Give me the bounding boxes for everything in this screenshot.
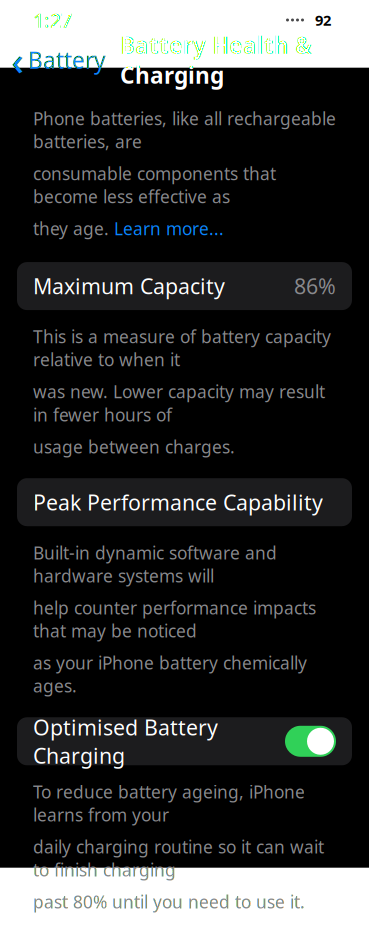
staticText: ‹	[11, 33, 24, 86]
button[interactable]: Peak Performance Capability	[17, 478, 352, 526]
staticText: This is a measure of battery capacity re…	[33, 325, 331, 371]
staticText: daily charging routine so it can wait to…	[33, 835, 324, 881]
staticText: To reduce battery ageing, iPhone learns …	[33, 780, 305, 826]
button[interactable]: ‹	[0, 33, 110, 86]
staticText: Built-in dynamic software and hardware s…	[33, 541, 277, 587]
button[interactable]: Learn more...	[114, 217, 224, 240]
staticText: they age.	[33, 217, 114, 240]
staticText: Battery	[28, 45, 106, 75]
staticText: past 80% until you need to use it.	[33, 890, 305, 913]
staticText: Phone batteries, like all rechargeable b…	[33, 107, 336, 153]
staticText: help counter performance impacts that ma…	[33, 596, 316, 642]
staticText: 92	[315, 10, 331, 30]
staticText: as your iPhone battery chemically ages.	[33, 651, 307, 697]
staticText: was new. Lower capacity may result in fe…	[33, 380, 325, 426]
staticText: Learn more...	[114, 217, 224, 240]
staticText: Optimised Battery Charging	[33, 713, 218, 770]
button[interactable]: Optimised Battery Charging	[17, 717, 352, 765]
staticText: Maximum Capacity	[33, 272, 225, 300]
staticText: Battery Health & Charging	[120, 30, 312, 90]
staticText: 86%	[294, 272, 336, 300]
button[interactable]: Maximum Capacity	[17, 262, 352, 310]
staticText: 1:27	[33, 7, 72, 33]
staticText: usage between charges.	[33, 435, 235, 458]
staticText: consumable components that become less e…	[33, 162, 276, 208]
staticText: Peak Performance Capability	[33, 488, 323, 516]
